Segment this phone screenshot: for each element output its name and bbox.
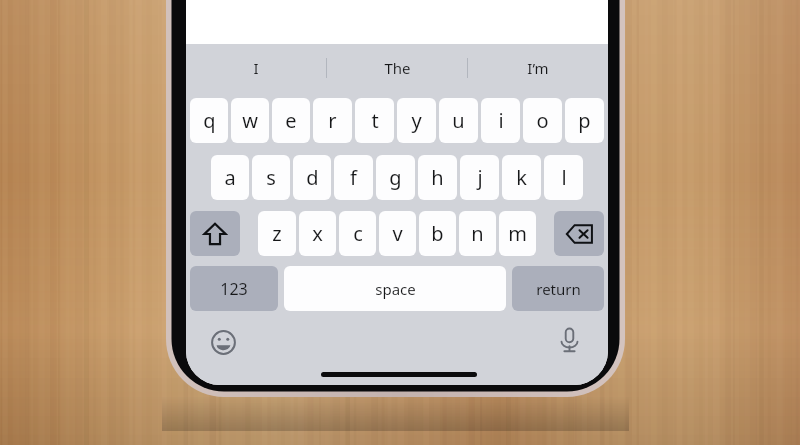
button[interactable]: k [502, 155, 541, 200]
staticText: p [578, 107, 591, 134]
button[interactable]: v [379, 211, 416, 256]
button[interactable]: a [211, 155, 249, 200]
staticText: space [375, 279, 416, 299]
button[interactable]: return [512, 266, 604, 311]
button[interactable]: h [418, 155, 457, 200]
button[interactable]: Emoji keyboard [202, 321, 244, 363]
button[interactable]: n [459, 211, 496, 256]
button[interactable]: q [190, 98, 228, 143]
staticText: n [471, 220, 484, 247]
button[interactable]: i [481, 98, 520, 143]
button[interactable]: c [339, 211, 376, 256]
button[interactable]: y [397, 98, 436, 143]
button[interactable]: o [523, 98, 562, 143]
staticText: i [498, 107, 504, 134]
staticText: o [536, 107, 549, 134]
button[interactable]: 123 [190, 266, 278, 311]
staticText: s [266, 164, 276, 191]
button[interactable]: z [258, 211, 296, 256]
button[interactable]: Backspace [554, 211, 604, 256]
button[interactable]: j [460, 155, 499, 200]
staticText: g [389, 164, 402, 191]
button[interactable]: I [186, 44, 326, 92]
staticText: r [328, 107, 337, 134]
staticText: d [306, 164, 319, 191]
staticText: I’m [527, 58, 549, 78]
button[interactable]: t [355, 98, 394, 143]
button[interactable]: Shift [190, 211, 240, 256]
staticText: h [431, 164, 444, 191]
staticText: v [392, 220, 403, 247]
staticText: 123 [220, 278, 248, 300]
staticText: return [536, 279, 581, 299]
staticText: z [272, 220, 282, 247]
staticText: y [411, 107, 422, 134]
staticText: e [285, 107, 297, 134]
button[interactable]: Dictation [548, 319, 590, 361]
staticText: f [350, 164, 357, 191]
button[interactable]: space [284, 266, 506, 311]
button[interactable]: b [419, 211, 456, 256]
button[interactable]: p [565, 98, 604, 143]
button[interactable]: f [334, 155, 373, 200]
staticText: I [253, 58, 259, 78]
button[interactable]: u [439, 98, 478, 143]
staticText: x [312, 220, 323, 247]
button[interactable]: The [327, 44, 467, 92]
button[interactable]: I’m [468, 44, 608, 92]
staticText: k [516, 164, 527, 191]
staticText: q [203, 107, 216, 134]
staticText: m [508, 220, 527, 247]
button[interactable]: m [499, 211, 536, 256]
button[interactable]: g [376, 155, 415, 200]
staticText: b [431, 220, 444, 247]
staticText: l [561, 164, 567, 191]
button[interactable]: x [299, 211, 336, 256]
button[interactable]: e [272, 98, 310, 143]
staticText: u [452, 107, 465, 134]
button[interactable]: w [231, 98, 269, 143]
staticText: The [384, 58, 411, 78]
button[interactable]: d [293, 155, 331, 200]
staticText: j [477, 164, 483, 191]
staticText: a [224, 164, 236, 191]
staticText: t [371, 107, 379, 134]
button[interactable]: l [544, 155, 583, 200]
staticText: c [353, 220, 363, 247]
button[interactable]: s [252, 155, 290, 200]
button[interactable]: r [313, 98, 352, 143]
staticText: w [242, 107, 258, 134]
